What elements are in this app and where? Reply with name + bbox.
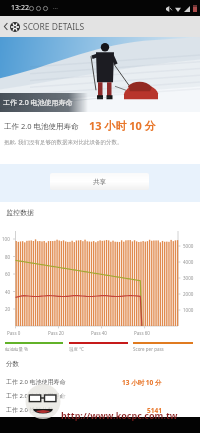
- staticText: 工作 2.0 电池使用寿命: [6, 378, 66, 386]
- staticText: 電腦王阿達: [58, 383, 168, 411]
- staticText: 5141: [147, 406, 162, 415]
- staticText: Pass 0: [7, 330, 21, 336]
- staticText: 抱歉, 我们没有足够的数据来对比此设备的分数。: [4, 138, 123, 146]
- staticText: ···: [53, 4, 58, 12]
- button[interactable]: 共享: [50, 173, 149, 190]
- staticText: 电池电量 %: [5, 346, 28, 352]
- staticText: 3000: [183, 275, 194, 281]
- staticText: 4000: [183, 259, 194, 265]
- staticText: 13:22: [11, 3, 29, 13]
- staticText: http://www.kocpc.com.tw: [61, 409, 178, 421]
- staticText: 40: [5, 289, 11, 295]
- staticText: 100: [2, 236, 10, 242]
- staticText: 5000: [183, 243, 194, 249]
- staticText: 共享: [93, 178, 106, 186]
- staticText: Pass 20: [48, 330, 64, 336]
- staticText: 分数: [6, 360, 19, 368]
- staticText: Score per pass: [133, 346, 164, 352]
- staticText: 20: [5, 306, 11, 312]
- staticText: SCORE DETAILS: [23, 21, 85, 33]
- button[interactable]: 工作 2.0 电池使用寿命: [0, 389, 200, 403]
- staticText: 13 小时 10 分: [89, 118, 156, 133]
- staticText: 1000: [183, 307, 194, 313]
- staticText: 工作 2.0 电池使用寿命: [6, 392, 66, 400]
- staticText: 13 小时 10 分: [122, 378, 162, 387]
- staticText: 工作 2.0 性能分数: [6, 406, 54, 414]
- staticText: 温度 °C: [69, 346, 84, 352]
- button[interactable]: 工作 2.0 电池使用寿命: [0, 375, 200, 389]
- button[interactable]: Back: [1, 16, 10, 37]
- staticText: 监控数据: [6, 208, 34, 217]
- button[interactable]: 工作 2.0 性能分数: [0, 403, 200, 417]
- staticText: 2000: [183, 291, 194, 297]
- staticText: 工作 2.0 电池使用寿命: [3, 98, 73, 108]
- staticText: 60: [5, 271, 11, 277]
- staticText: 80: [5, 254, 11, 260]
- staticText: Pass 40: [91, 330, 107, 336]
- staticText: Pass 60: [134, 330, 150, 336]
- staticText: 工作 2.0 电池使用寿命: [4, 121, 79, 131]
